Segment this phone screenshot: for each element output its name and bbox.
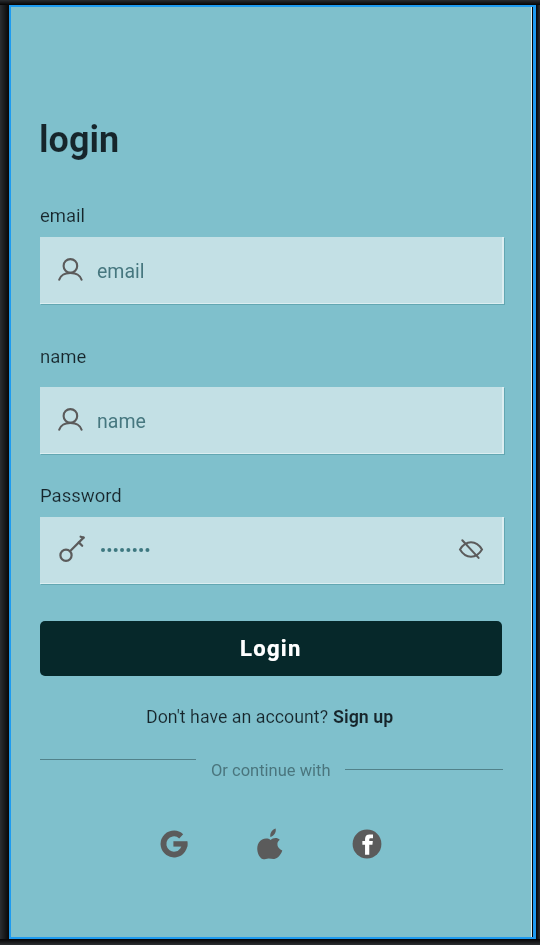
button[interactable]: Continue with Google [159,829,189,859]
button[interactable]: Continue with Apple [255,828,286,859]
button[interactable]: Toggle password visibility [40,517,502,583]
button[interactable]: name [40,387,502,453]
staticText: Sign up [333,706,394,727]
button[interactable]: Login [40,621,502,676]
staticText: Password [40,485,122,507]
button[interactable]: email [40,237,502,303]
staticText: Don't have an account? [146,706,333,727]
staticText: Or continue with [211,761,331,780]
button[interactable]: Toggle password visibility [459,538,483,562]
staticText: login [39,119,120,161]
staticText: Login [240,636,302,662]
staticText: email [40,205,86,227]
button[interactable]: Continue with Facebook [352,829,382,859]
button[interactable]: Sign up [333,706,394,727]
staticText: email [97,260,145,283]
staticText: name [40,346,87,368]
staticText: name [97,410,146,433]
